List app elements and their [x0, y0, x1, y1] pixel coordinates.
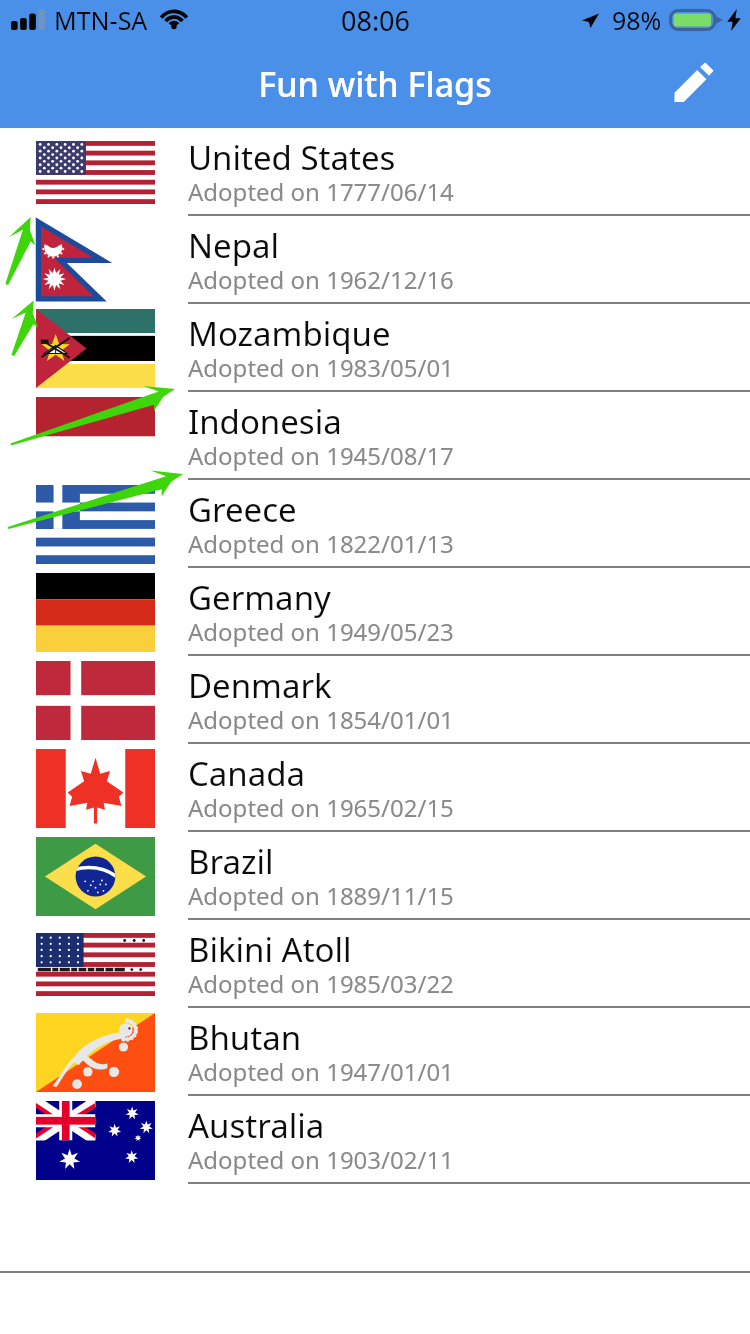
staticText: Adopted on 1947/01/01	[188, 1055, 454, 1088]
staticText: Indonesia	[188, 399, 342, 444]
staticText: Bikini Atoll	[188, 927, 352, 972]
staticText: Mozambique	[188, 311, 391, 356]
button[interactable]: Germany	[0, 568, 750, 656]
staticText: Australia	[188, 1103, 325, 1148]
staticText: Adopted on 1854/01/01	[188, 703, 454, 736]
staticText: MTN-SA	[54, 3, 148, 37]
staticText: 98%	[612, 3, 662, 37]
button[interactable]: United States	[0, 128, 750, 216]
button[interactable]: Mozambique	[0, 304, 750, 392]
button[interactable]: Bikini Atoll	[0, 920, 750, 1008]
button[interactable]: Australia	[0, 1096, 750, 1184]
button[interactable]: Canada	[0, 744, 750, 832]
staticText: Adopted on 1985/03/22	[188, 967, 454, 1000]
staticText: Adopted on 1962/12/16	[188, 263, 454, 296]
staticText: Adopted on 1822/01/13	[188, 527, 454, 560]
button[interactable]: Brazil	[0, 832, 750, 920]
staticText: Adopted on 1949/05/23	[188, 615, 454, 648]
button[interactable]: Nepal	[0, 216, 750, 304]
button[interactable]: Indonesia	[0, 392, 750, 480]
staticText: Fun with Flags	[258, 61, 492, 107]
staticText: Adopted on 1983/05/01	[188, 351, 454, 384]
button[interactable]: Denmark	[0, 656, 750, 744]
staticText: Canada	[188, 751, 306, 796]
staticText: 08:06	[341, 2, 411, 39]
staticText: Bhutan	[188, 1015, 302, 1060]
staticText: Adopted on 1889/11/15	[188, 879, 454, 912]
staticText: Adopted on 1777/06/14	[188, 175, 454, 208]
staticText: Denmark	[188, 663, 332, 708]
staticText: United States	[188, 135, 396, 180]
button[interactable]: Greece	[0, 480, 750, 568]
staticText: Adopted on 1945/08/17	[188, 439, 454, 472]
staticText: Adopted on 1903/02/11	[188, 1143, 454, 1176]
staticText: Germany	[188, 575, 331, 620]
staticText: Brazil	[188, 839, 274, 884]
button[interactable]: Bhutan	[0, 1008, 750, 1096]
staticText: Greece	[188, 487, 297, 532]
button[interactable]: Edit	[665, 56, 721, 112]
staticText: Adopted on 1965/02/15	[188, 791, 454, 824]
staticText: Nepal	[188, 223, 280, 268]
